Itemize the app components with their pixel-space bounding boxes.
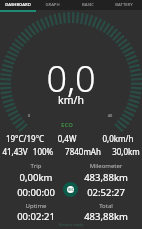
staticText: GRAPH [45, 2, 60, 8]
staticText: 0,0 [11, 54, 131, 103]
button[interactable]: GRAPH [35, 0, 70, 10]
staticText: DASHBOARD [5, 2, 31, 8]
staticText: REC [68, 188, 74, 192]
staticText: BASIC [82, 2, 94, 8]
button[interactable]: Record trip [63, 182, 78, 197]
staticText: 41,43V [0, 146, 35, 157]
staticText: km/h [41, 93, 101, 107]
button[interactable]: BASIC [70, 0, 106, 10]
button[interactable]: BATTERY [106, 0, 142, 10]
staticText: 00:00:00 [0, 186, 76, 199]
staticText: 0,0km/h [88, 133, 142, 144]
staticText: 19°C/19°C [0, 133, 55, 144]
staticText: 7840mAh [53, 146, 113, 157]
staticText: 0 [19, 113, 39, 118]
staticText: 0,00km [0, 171, 76, 184]
staticText: BATTERY [115, 2, 133, 8]
staticText: 100% [23, 146, 63, 157]
staticText: System ready [21, 222, 121, 227]
staticText: Mileometer [66, 162, 142, 170]
staticText: 00:02:21 [0, 210, 76, 223]
staticText: 40 [100, 113, 120, 118]
staticText: Trip [0, 162, 76, 170]
staticText: 02:52:27 [66, 186, 142, 199]
staticText: Total [66, 202, 142, 210]
staticText: Uptime [0, 202, 76, 210]
staticText: 30,0km [106, 146, 142, 157]
staticText: 483,88km [66, 171, 142, 184]
staticText: 0,4W [47, 133, 87, 144]
staticText: ECO [47, 121, 87, 129]
staticText: 483,88km [66, 210, 142, 223]
button[interactable]: DASHBOARD [0, 0, 35, 10]
